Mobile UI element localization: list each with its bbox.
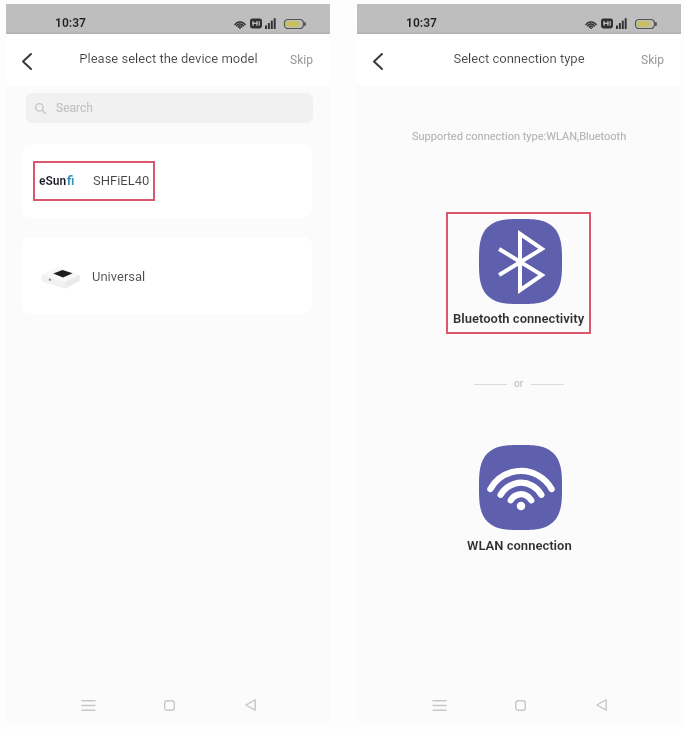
- button[interactable]: Home: [154, 690, 184, 720]
- button[interactable]: Skip: [284, 45, 319, 75]
- button[interactable]: Skip: [635, 45, 670, 75]
- staticText: 10:37: [55, 16, 86, 30]
- staticText: eSun: [39, 174, 67, 188]
- staticText: Search: [56, 101, 93, 115]
- button[interactable]: Recent apps: [424, 690, 454, 720]
- button[interactable]: Bluetooth connectivity: [446, 212, 591, 334]
- button[interactable]: Back: [13, 47, 41, 75]
- staticText: fi: [67, 174, 75, 188]
- staticText: Bluetooth connectivity: [453, 311, 585, 326]
- staticText: Skip: [290, 53, 313, 67]
- staticText: Supported connection type:WLAN,Bluetooth: [412, 130, 627, 143]
- button[interactable]: eSun: [22, 144, 312, 218]
- staticText: Skip: [641, 53, 664, 67]
- staticText: Select connection type: [453, 51, 585, 66]
- button[interactable]: Back: [235, 690, 265, 720]
- button[interactable]: Recent apps: [73, 690, 103, 720]
- staticText: SHFiEL40: [93, 173, 150, 188]
- staticText: Please select the device model: [79, 51, 258, 66]
- staticText: Universal: [92, 269, 146, 284]
- staticText: or: [514, 378, 524, 390]
- button[interactable]: Back: [364, 47, 392, 75]
- button[interactable]: Back: [586, 690, 616, 720]
- staticText: 10:37: [406, 16, 437, 30]
- button[interactable]: Universal: [22, 237, 312, 314]
- button[interactable]: Home: [505, 690, 535, 720]
- button[interactable]: Search: [26, 93, 313, 123]
- staticText: WLAN connection: [467, 538, 572, 553]
- button[interactable]: WLAN connection: [467, 445, 572, 553]
